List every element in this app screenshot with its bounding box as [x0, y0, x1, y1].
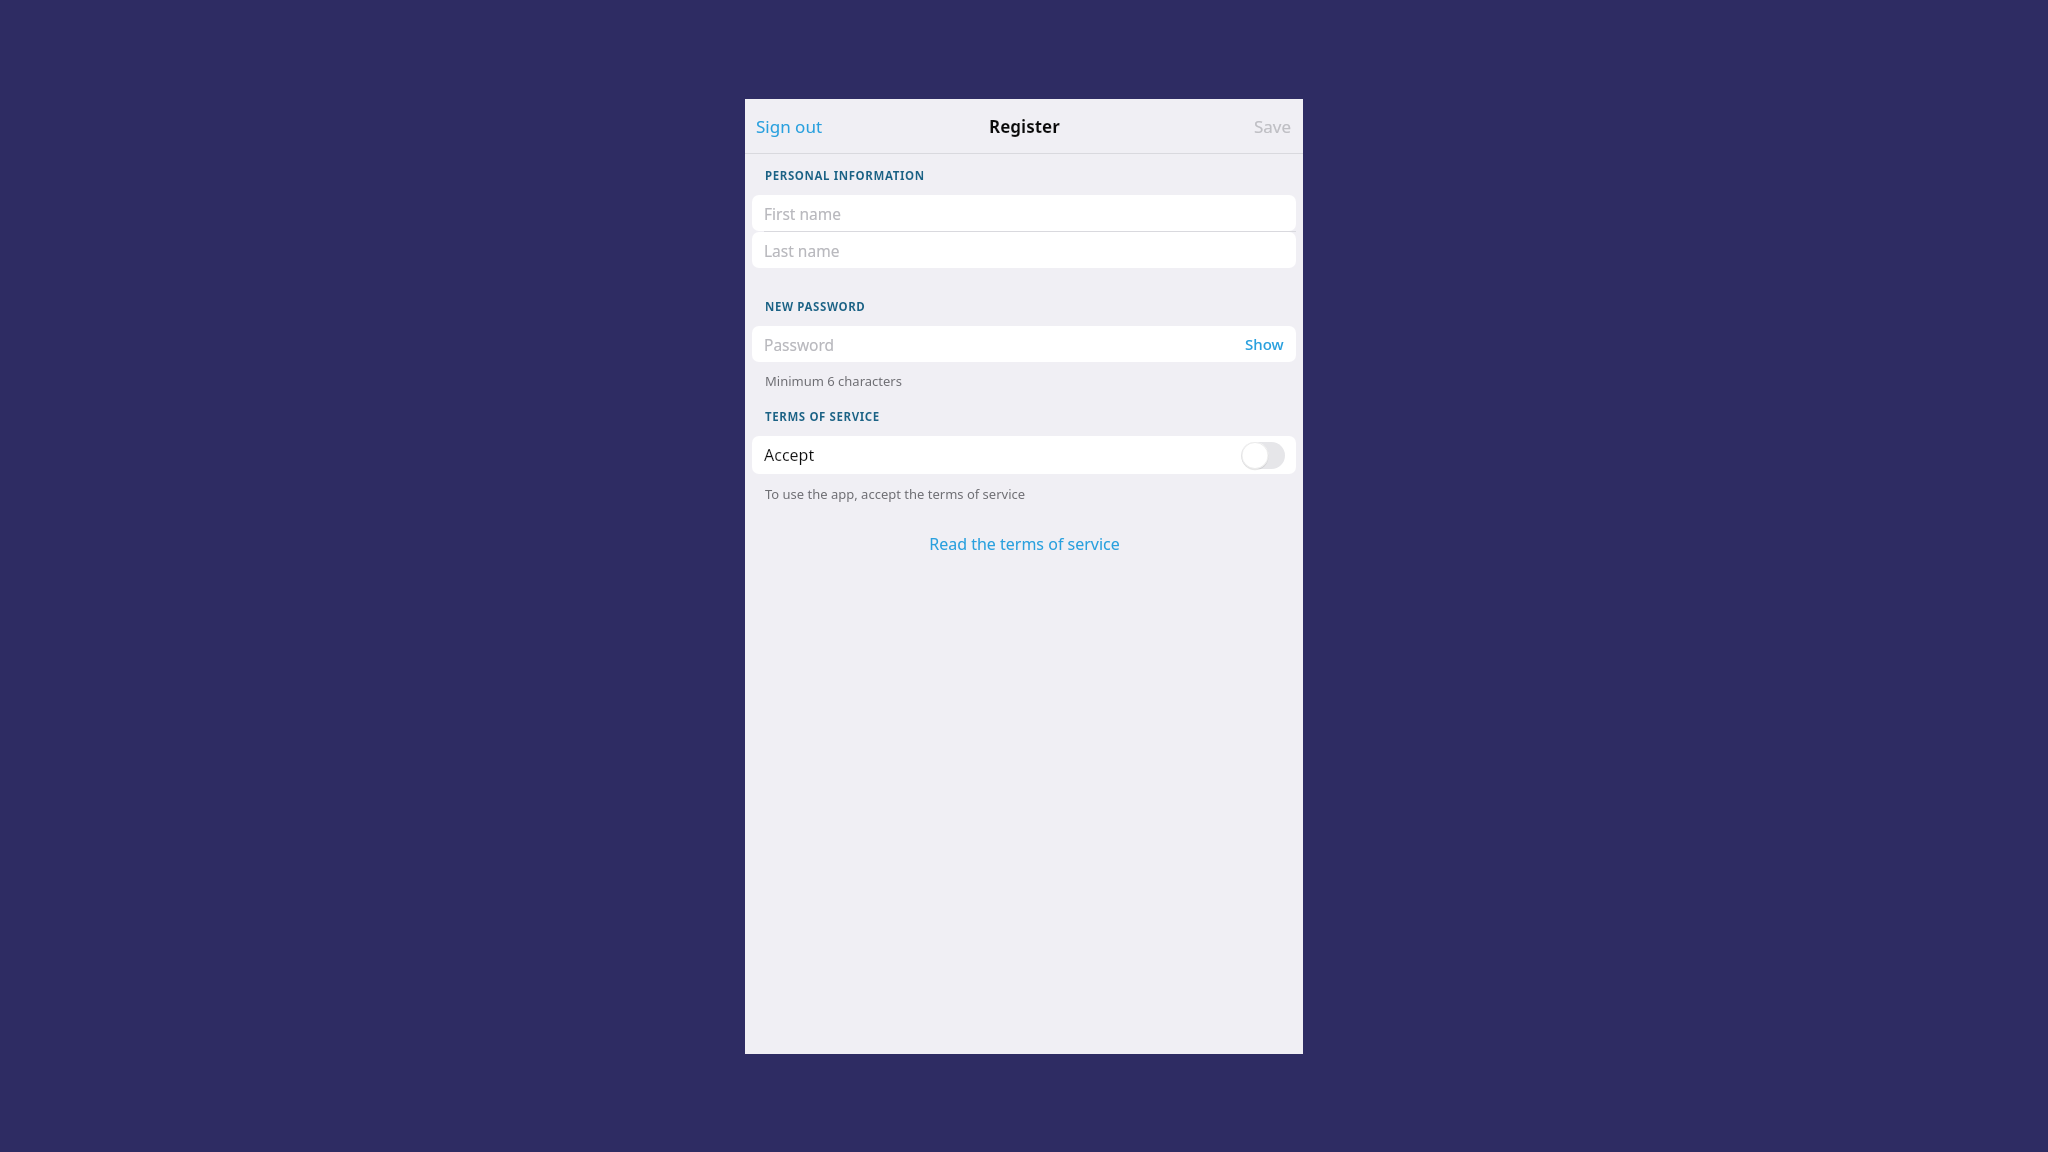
button[interactable]: First name: [752, 195, 1296, 231]
staticText: Minimum 6 characters: [765, 372, 902, 390]
staticText: First name: [764, 203, 842, 224]
staticText: PERSONAL INFORMATION: [765, 168, 925, 184]
staticText: Password: [764, 334, 1245, 355]
staticText: Show: [1245, 334, 1284, 354]
staticText: Accept: [764, 444, 815, 466]
button[interactable]: Read the terms of service: [752, 533, 1296, 555]
button[interactable]: Password: [752, 326, 1296, 362]
staticText: TERMS OF SERVICE: [765, 409, 880, 425]
staticText: Last name: [764, 240, 840, 261]
staticText: NEW PASSWORD: [765, 299, 866, 315]
button[interactable]: Accept terms of service toggle: [1241, 442, 1285, 469]
button[interactable]: Last name: [752, 232, 1296, 268]
button[interactable]: Show: [1245, 334, 1284, 354]
button[interactable]: Save: [1243, 109, 1303, 144]
staticText: To use the app, accept the terms of serv…: [765, 485, 1026, 503]
staticText: Register: [989, 115, 1060, 138]
staticText: Read the terms of service: [929, 533, 1120, 555]
staticText: Save: [1254, 115, 1292, 138]
staticText: Sign out: [756, 115, 823, 138]
button[interactable]: Accept: [752, 436, 1296, 474]
button[interactable]: Sign out: [745, 109, 834, 144]
